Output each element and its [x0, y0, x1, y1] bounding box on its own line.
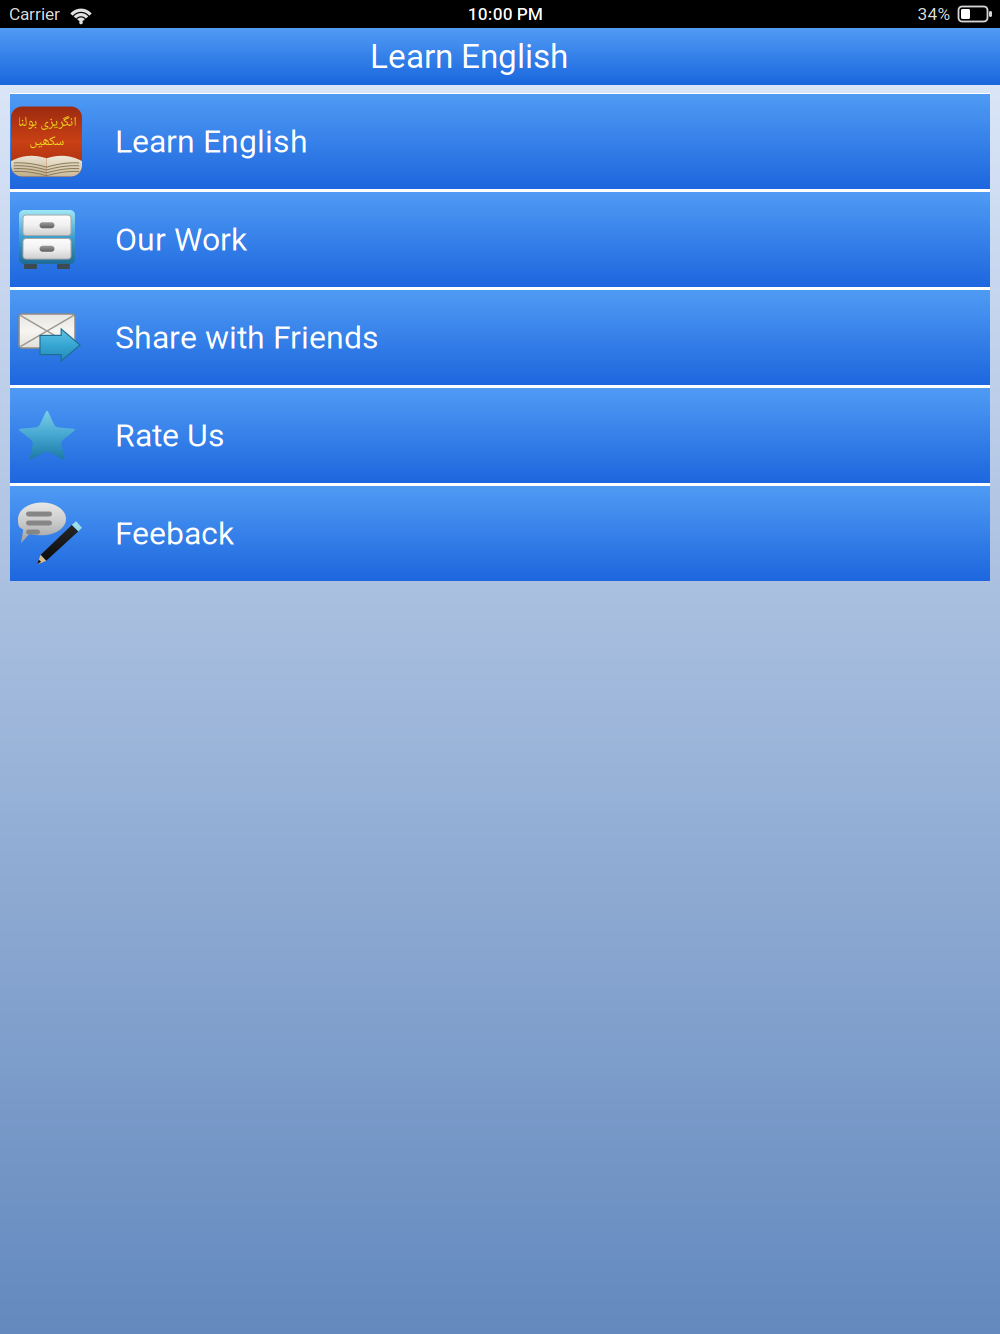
staticText: 10:00 PM [468, 4, 543, 24]
staticText: Carrier [9, 4, 60, 24]
staticText: Learn English [115, 123, 308, 160]
staticText: Feeback [115, 515, 234, 552]
staticText: سکھیں [29, 133, 64, 151]
button[interactable]: Share with Friends [10, 290, 990, 385]
staticText: Rate Us [115, 417, 225, 454]
button[interactable]: انگریزی بولنا [10, 94, 990, 189]
staticText: 34% [917, 4, 950, 24]
staticText: Share with Friends [115, 319, 379, 356]
button[interactable]: Our Work [10, 192, 990, 287]
button[interactable]: Feeback [10, 486, 990, 581]
staticText: Our Work [115, 221, 247, 258]
button[interactable]: Rate Us [10, 388, 990, 483]
staticText: Learn English [370, 37, 568, 76]
staticText: انگریزی بولنا [17, 113, 76, 132]
